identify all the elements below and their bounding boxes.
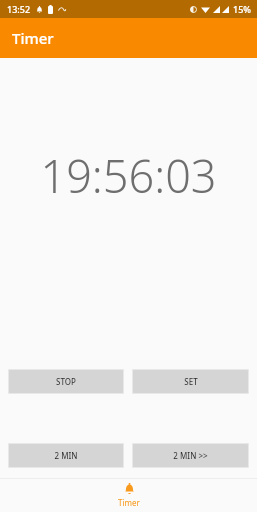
button[interactable]: STOP (8, 369, 124, 394)
staticText: 19:56:03 (40, 145, 217, 206)
staticText: STOP (56, 376, 76, 387)
staticText: Timer (12, 28, 54, 48)
staticText: SET (184, 376, 198, 387)
staticText: 2 MIN >> (173, 450, 208, 461)
button[interactable]: 2 MIN (8, 443, 124, 468)
button[interactable]: SET (132, 369, 249, 394)
staticText: 2 MIN (54, 450, 78, 461)
button[interactable]: 2 MIN >> (132, 443, 249, 468)
staticText: 15% (233, 3, 251, 15)
staticText: Timer (118, 497, 140, 508)
staticText: 13:52 (7, 3, 31, 15)
button[interactable]: Timer tab (94, 479, 164, 512)
